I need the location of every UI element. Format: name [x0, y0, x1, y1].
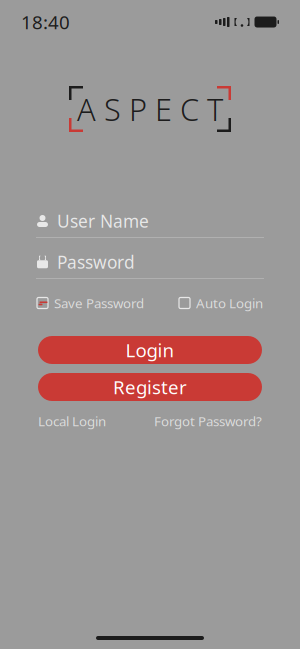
staticText: Local Login	[38, 412, 106, 430]
staticText: Register	[113, 375, 187, 399]
staticText: 18:40	[21, 10, 70, 34]
staticText: Login	[125, 338, 174, 362]
staticText: Auto Login	[196, 294, 263, 312]
button[interactable]: Local Login	[38, 412, 106, 430]
button[interactable]: Login	[38, 336, 262, 364]
button[interactable]: Register	[38, 373, 262, 401]
staticText: Save Password	[54, 294, 144, 312]
staticText: User Name	[57, 209, 149, 232]
button[interactable]: Forgot Password?	[154, 412, 262, 430]
staticText: Forgot Password?	[154, 412, 262, 430]
button[interactable]: Save Password	[37, 294, 144, 312]
staticText: A S P E C T	[77, 89, 223, 129]
staticText: Password	[57, 250, 135, 273]
button[interactable]: Auto Login	[179, 294, 263, 312]
